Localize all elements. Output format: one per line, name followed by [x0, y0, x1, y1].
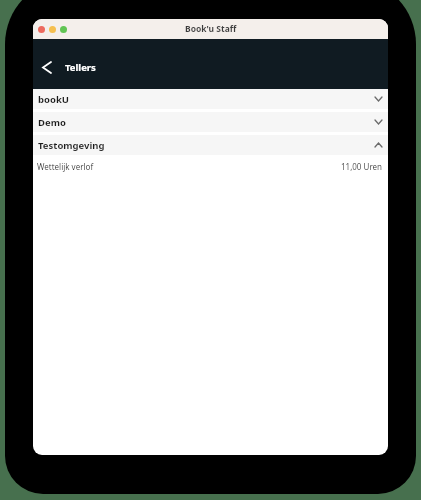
button[interactable]: [38, 26, 45, 33]
button[interactable]: bookU: [33, 89, 388, 109]
staticText: Book'u Staff: [185, 23, 237, 35]
staticText: Wettelijk verlof: [37, 161, 94, 172]
button[interactable]: Wettelijk verlof: [33, 155, 388, 178]
button[interactable]: Demo: [33, 112, 388, 132]
staticText: Demo: [38, 116, 66, 129]
button[interactable]: Testomgeving: [33, 135, 388, 155]
staticText: Tellers: [65, 61, 96, 74]
staticText: bookU: [38, 93, 69, 106]
button[interactable]: [49, 26, 56, 33]
button[interactable]: [43, 62, 51, 73]
button[interactable]: [60, 26, 67, 33]
staticText: 11,00 Uren: [341, 161, 382, 172]
staticText: Testomgeving: [38, 139, 105, 152]
